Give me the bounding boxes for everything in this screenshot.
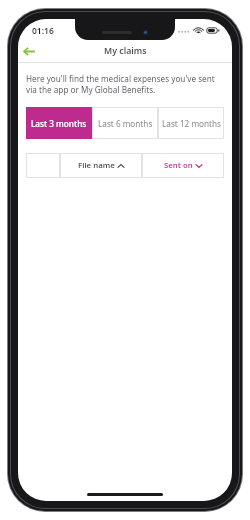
button[interactable]: Sent on [142, 153, 224, 178]
staticText: Last 6 months [98, 118, 153, 129]
staticText: Last 12 months [162, 118, 221, 129]
button[interactable]: File name [60, 153, 142, 178]
button[interactable]: Last 12 months [158, 107, 224, 139]
staticText: Last 3 months [31, 118, 87, 129]
staticText: 01:16 [32, 25, 54, 37]
staticText: My claims [104, 45, 147, 57]
button[interactable]: Back [18, 41, 38, 61]
staticText: Here you'll find the medical expenses yo… [26, 73, 224, 96]
staticText: File name [78, 160, 115, 171]
button[interactable]: Last 3 months [26, 107, 92, 139]
button[interactable]: Last 6 months [92, 107, 158, 139]
staticText: Sent on [164, 160, 193, 171]
